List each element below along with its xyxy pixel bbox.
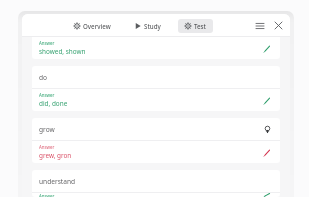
staticText: grew, gron	[39, 151, 72, 160]
staticText: Answer	[39, 144, 55, 150]
staticText: Answer	[39, 92, 55, 98]
button[interactable]: Close	[272, 19, 285, 32]
button[interactable]: Hint	[261, 123, 273, 135]
staticText: showed, shown	[39, 47, 86, 56]
button[interactable]: Test	[178, 19, 213, 33]
staticText: Answer	[39, 40, 55, 46]
button[interactable]: Edit answer	[260, 42, 273, 55]
staticText: Answer	[39, 193, 55, 197]
button[interactable]: Edit answer	[260, 193, 273, 197]
button[interactable]: Overview	[67, 19, 118, 33]
staticText: do	[39, 73, 273, 82]
staticText: did, done	[39, 99, 68, 108]
button[interactable]: Edit answer	[260, 146, 273, 159]
staticText: grow	[39, 125, 261, 134]
staticText: Study	[144, 22, 161, 30]
button[interactable]: Edit answer	[260, 94, 273, 107]
button[interactable]: do	[32, 66, 280, 111]
staticText: Overview	[83, 22, 111, 30]
button[interactable]: Study	[128, 19, 168, 33]
staticText: understand	[39, 177, 273, 186]
button[interactable]: understand	[32, 170, 280, 197]
button[interactable]: Menu	[253, 19, 267, 33]
staticText: Test	[194, 22, 206, 30]
button[interactable]: grow	[32, 118, 280, 163]
